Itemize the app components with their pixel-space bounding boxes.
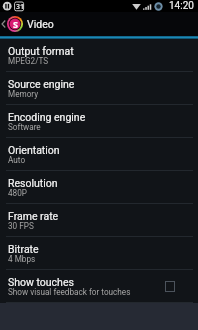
button[interactable]: Navigate up bbox=[0, 12, 23, 36]
staticText: Bitrate bbox=[8, 243, 39, 255]
staticText: 31 bbox=[16, 2, 25, 12]
staticText: 30 FPS bbox=[8, 221, 34, 231]
staticText: Show touches bbox=[8, 276, 74, 288]
staticText: MPEG2/TS bbox=[8, 56, 49, 66]
staticText: S bbox=[13, 18, 18, 30]
button[interactable]: Resolution bbox=[0, 171, 198, 204]
staticText: 14:20 bbox=[169, 0, 194, 12]
staticText: 4 Mbps bbox=[8, 254, 36, 264]
button[interactable]: Source engine bbox=[0, 72, 198, 105]
staticText: Memory bbox=[8, 89, 39, 99]
staticText: Software bbox=[8, 122, 41, 132]
staticText: Orientation bbox=[8, 144, 60, 156]
staticText: Frame rate bbox=[8, 210, 59, 222]
button[interactable]: Frame rate bbox=[0, 204, 198, 237]
button[interactable]: Bitrate bbox=[0, 237, 198, 270]
button[interactable]: Encoding engine bbox=[0, 105, 198, 138]
staticText: Auto bbox=[8, 155, 26, 165]
button[interactable]: Show touches bbox=[0, 270, 198, 303]
button[interactable]: Orientation bbox=[0, 138, 198, 171]
staticText: 480P bbox=[8, 188, 27, 198]
button[interactable]: Output format bbox=[0, 39, 198, 72]
staticText: Output format bbox=[8, 45, 74, 57]
staticText: Show visual feedback for touches bbox=[8, 287, 131, 297]
staticText: Source engine bbox=[8, 78, 75, 90]
staticText: Resolution bbox=[8, 177, 58, 189]
staticText: Encoding engine bbox=[8, 111, 86, 123]
staticText: Video bbox=[27, 18, 54, 30]
